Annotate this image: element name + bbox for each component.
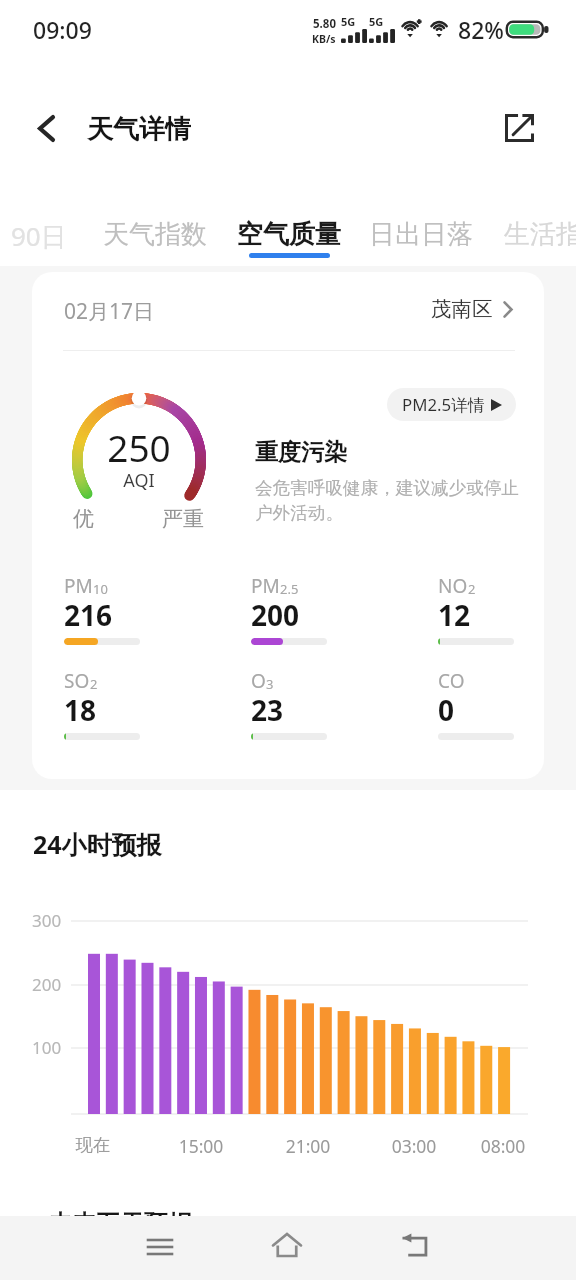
staticText: 0 [438, 691, 455, 729]
button[interactable]: Home [258, 1216, 316, 1274]
staticText: 日出日落 [369, 218, 473, 251]
staticText: 02月17日 [64, 297, 155, 326]
staticText: 100 [32, 1036, 62, 1059]
staticText: 09:09 [33, 14, 92, 45]
button[interactable]: Back [386, 1216, 444, 1274]
staticText: 3 [266, 675, 274, 693]
staticText: 200 [32, 973, 62, 996]
staticText: 5G [369, 14, 384, 29]
staticText: 天气指数 [103, 218, 207, 251]
button[interactable]: PM2.5详情 [387, 388, 516, 421]
staticText: 2 [90, 675, 98, 693]
button[interactable]: 日出日落 [369, 218, 473, 251]
staticText: KB/s [312, 32, 336, 46]
staticText: 21:00 [268, 1134, 348, 1158]
staticText: 90日 [11, 218, 67, 254]
staticText: 216 [64, 596, 113, 634]
button[interactable]: Back [16, 98, 76, 158]
staticText: 23 [251, 691, 284, 729]
staticText: 天气详情 [87, 113, 191, 146]
button[interactable]: Share [490, 99, 548, 157]
staticText: PM2.5详情 [402, 393, 485, 416]
staticText: O [251, 668, 266, 694]
button[interactable]: 90日 [11, 218, 67, 254]
staticText: 现在 [53, 1134, 133, 1156]
staticText: 未来五天预报 [48, 1209, 192, 1239]
staticText: 5G [341, 14, 356, 29]
staticText: 2 [468, 580, 476, 598]
staticText: 03:00 [374, 1134, 454, 1158]
staticText: 生活指数 [504, 218, 576, 251]
button[interactable]: 空气质量 [237, 218, 341, 258]
staticText: 10 [93, 580, 108, 598]
staticText: 优 [73, 506, 94, 532]
staticText: PM [251, 573, 280, 599]
staticText: 250 [39, 422, 239, 472]
staticText: AQI [39, 468, 239, 493]
staticText: NO [438, 573, 468, 599]
staticText: 24小时预报 [33, 827, 162, 861]
staticText: 200 [251, 596, 300, 634]
staticText: 18 [64, 691, 97, 729]
staticText: 重度污染 [255, 438, 347, 467]
staticText: 5.80 [313, 16, 336, 32]
staticText: 空气质量 [237, 218, 341, 251]
button[interactable]: 生活指数 [504, 218, 576, 251]
button[interactable]: 茂南区 [431, 296, 513, 322]
staticText: SO [64, 668, 90, 694]
staticText: 08:00 [463, 1134, 543, 1158]
button[interactable]: Recent apps [131, 1218, 189, 1276]
staticText: 严重 [162, 506, 204, 532]
staticText: 会危害呼吸健康，建议减少或停止户外活动。 [255, 477, 521, 524]
button[interactable]: 天气指数 [103, 218, 207, 251]
staticText: 15:00 [161, 1134, 241, 1158]
staticText: 12 [438, 596, 471, 634]
staticText: 茂南区 [431, 296, 493, 322]
staticText: 300 [32, 909, 62, 932]
staticText: 2.5 [280, 580, 299, 598]
staticText: CO [438, 668, 465, 694]
staticText: 82% [458, 14, 504, 45]
staticText: PM [64, 573, 93, 599]
